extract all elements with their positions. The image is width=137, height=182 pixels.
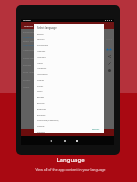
staticText: Rating (106, 38, 113, 41)
staticText: Afrikaans (37, 56, 46, 59)
button[interactable]: Arabic (34, 60, 104, 66)
button[interactable]: Khmer (34, 83, 104, 89)
button[interactable]: Czech (34, 88, 104, 94)
staticText: Cantonese (traditional) (37, 119, 59, 122)
button[interactable]: Azerbaijani (34, 71, 104, 77)
button[interactable]: Bosnian (34, 100, 104, 106)
button[interactable]: Chinese (34, 123, 104, 129)
staticText: Bosnian (37, 102, 45, 105)
button[interactable]: Croatian (34, 129, 104, 135)
staticText: Settings (23, 19, 31, 22)
staticText: Bulgarian (37, 108, 47, 111)
button[interactable]: Spanish (34, 36, 104, 42)
staticText: Czech (37, 90, 43, 93)
button[interactable]: Afrikaans (34, 54, 104, 60)
button[interactable]: English (34, 31, 104, 37)
button[interactable]: Armenian (34, 65, 104, 71)
staticText: Cloud Sync (23, 57, 35, 60)
staticText: Albanian (37, 50, 46, 53)
staticText: Chinese (37, 125, 45, 128)
staticText: Push Notif (23, 71, 34, 74)
staticText: Production (23, 36, 35, 39)
button[interactable]: Bengali (34, 94, 104, 100)
staticText: English (37, 33, 44, 36)
staticText: Language (56, 156, 85, 164)
staticText: Armenian (37, 67, 47, 70)
staticText: Privacy (23, 79, 31, 82)
staticText: Croatian (37, 131, 45, 134)
staticText: Settings (24, 24, 34, 27)
staticText: Khmer (37, 85, 44, 88)
staticText: About (23, 86, 30, 89)
staticText: Environment (23, 31, 37, 34)
button[interactable]: Cantonese (traditional) (34, 117, 104, 123)
staticText: View all of the app content in your lang… (35, 167, 106, 172)
staticText: Portuguese (37, 44, 48, 47)
staticText: Spanish (37, 38, 45, 41)
staticText: Storage (23, 64, 31, 67)
staticText: Auto select (23, 44, 35, 47)
staticText: SELECT (92, 128, 100, 131)
button[interactable]: SELECT (92, 128, 100, 131)
button[interactable]: Portuguese (34, 42, 104, 48)
staticText: Notifications (23, 49, 37, 52)
staticText: Catalan (37, 79, 45, 82)
button[interactable]: Albanian (34, 48, 104, 54)
button[interactable]: Bulgarian (34, 106, 104, 112)
staticText: Burmese (37, 114, 46, 117)
staticText: Arabic (37, 62, 43, 65)
button[interactable]: Burmese (34, 112, 104, 118)
staticText: Select server (23, 40, 37, 43)
staticText: Azerbaijani (37, 73, 48, 76)
staticText: Bengali (37, 96, 45, 99)
staticText: Select language (37, 26, 57, 30)
button[interactable]: Catalan (34, 77, 104, 83)
